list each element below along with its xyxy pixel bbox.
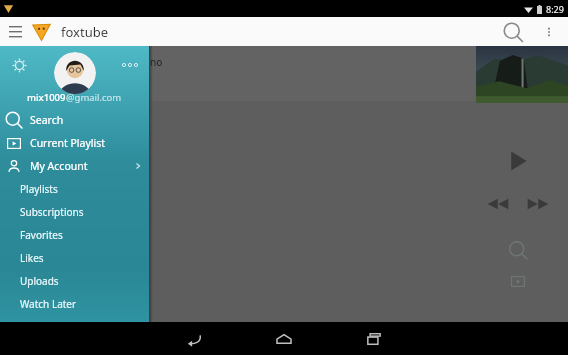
staticText: Favorites [20,228,63,242]
button[interactable]: Settings [6,52,32,78]
button[interactable]: My Account [0,154,149,177]
button[interactable]: Playlists [0,177,149,200]
button[interactable]: More options [536,19,562,45]
button[interactable]: Next [521,187,555,221]
staticText: foxtube [61,23,109,41]
staticText: Playlists [20,182,58,196]
button[interactable]: Current playlist [505,273,531,289]
staticText: Likes [20,251,44,265]
button[interactable]: Now playing thumbnail [476,46,568,103]
staticText: 8:29 [546,3,564,15]
button[interactable]: Account avatar [54,52,96,94]
staticText: My Account [30,159,88,173]
button[interactable]: Search [0,108,149,131]
button[interactable]: Previous [481,187,515,221]
button[interactable]: Open navigation drawer [4,21,26,43]
staticText: Subscriptions [20,205,84,219]
staticText: Search [30,113,64,127]
staticText: Watch Later [20,297,77,311]
button[interactable]: Play [498,141,538,181]
button[interactable]: Home [261,324,307,354]
button[interactable]: Back [171,324,217,354]
button[interactable]: Subscriptions [0,200,149,223]
staticText: Current Playlist [30,136,106,150]
button[interactable]: Search [503,235,533,265]
button[interactable]: Search [500,19,526,45]
staticText: @gmail.com [66,91,122,104]
staticText: no [150,55,163,69]
staticText: mix1009 [27,91,66,104]
button[interactable]: Uploads [0,269,149,292]
staticText: Uploads [20,274,59,288]
button[interactable]: Current Playlist [0,131,149,154]
button[interactable]: Recent apps [351,324,397,354]
button[interactable]: Favorites [0,223,149,246]
button[interactable]: Account options [117,52,143,78]
button[interactable]: Likes [0,246,149,269]
button[interactable]: Watch Later [0,292,149,315]
